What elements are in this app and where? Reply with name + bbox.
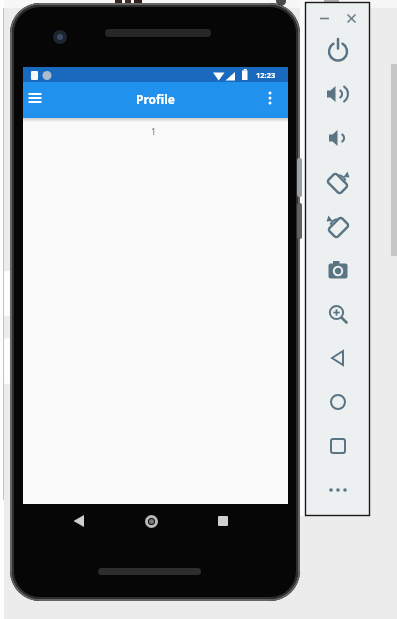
- button[interactable]: [305, 116, 370, 160]
- staticText: 12:23: [256, 70, 276, 80]
- button[interactable]: [258, 81, 282, 115]
- staticText: 1: [151, 125, 157, 137]
- staticText: Profile: [136, 91, 176, 107]
- button[interactable]: [344, 11, 359, 26]
- button[interactable]: [23, 81, 47, 115]
- button[interactable]: [136, 507, 166, 535]
- button[interactable]: [317, 11, 332, 26]
- button[interactable]: [305, 292, 370, 336]
- button[interactable]: [208, 507, 238, 535]
- button[interactable]: [305, 468, 370, 512]
- button[interactable]: [305, 336, 370, 380]
- button[interactable]: [305, 160, 370, 204]
- button[interactable]: [305, 72, 370, 116]
- button[interactable]: [64, 507, 94, 535]
- button[interactable]: [305, 380, 370, 424]
- button[interactable]: [305, 204, 370, 248]
- button[interactable]: [305, 248, 370, 292]
- button[interactable]: [305, 424, 370, 468]
- button[interactable]: [305, 28, 370, 72]
